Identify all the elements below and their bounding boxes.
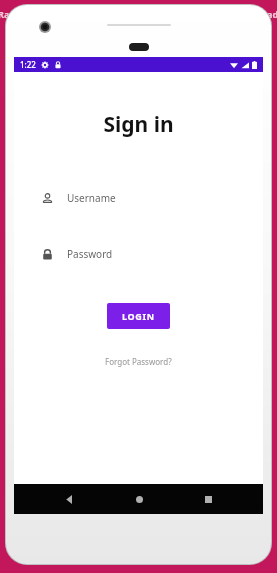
staticText: Sign in [14, 110, 263, 139]
staticText: Username [67, 191, 116, 205]
button[interactable]: Recent apps [193, 484, 223, 514]
button[interactable]: Forgot Password? [97, 353, 180, 370]
button[interactable]: Home [124, 484, 154, 514]
staticText: Rar [0, 8, 14, 20]
staticText: Forgot Password? [105, 356, 172, 367]
button[interactable]: Username [14, 189, 263, 207]
staticText: ad [267, 8, 277, 20]
button[interactable]: LOGIN [107, 303, 170, 329]
staticText: Password [67, 247, 113, 261]
staticText: LOGIN [122, 310, 155, 322]
button[interactable]: Password [14, 245, 263, 263]
staticText: 1:22 [20, 59, 36, 70]
button[interactable]: Back [54, 484, 84, 514]
